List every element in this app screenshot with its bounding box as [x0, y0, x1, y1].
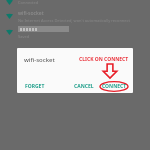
button[interactable]: CANCEL [73, 81, 95, 92]
staticText: CANCEL [74, 83, 94, 90]
staticText: wifi-socket [18, 10, 44, 17]
staticText: Saved [18, 34, 30, 39]
staticText: CLICK ON CONNECT [79, 56, 129, 63]
staticText: Connected [18, 0, 39, 5]
staticText: No Internet Access Detected, won't autom… [18, 18, 130, 23]
staticText: FORGET [25, 83, 45, 90]
staticText: CONNECT [102, 83, 127, 90]
staticText: wifi-socket [24, 56, 55, 64]
button[interactable]: wifi-socket [0, 8, 150, 24]
button[interactable]: Connected [0, 0, 150, 8]
button[interactable]: FORGET [24, 81, 46, 92]
button[interactable]: CONNECT [100, 81, 128, 92]
button[interactable]: Saved [0, 24, 150, 40]
